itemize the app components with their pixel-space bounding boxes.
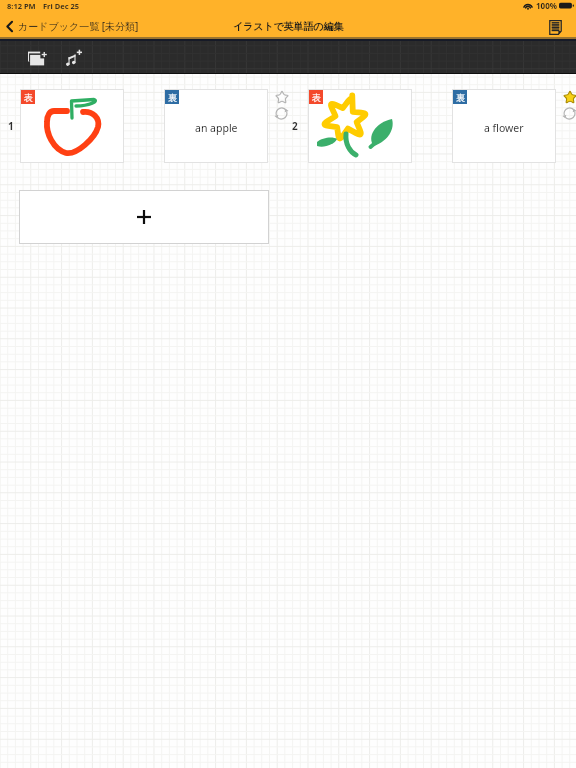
staticText: 表 <box>24 92 33 103</box>
button[interactable]: カードブック一覧 [未分類] <box>5 19 139 33</box>
button[interactable]: Add card <box>22 43 52 73</box>
button[interactable]: 表 <box>20 89 124 163</box>
button[interactable]: a flower <box>452 89 556 163</box>
staticText: 2 <box>292 119 298 133</box>
staticText: 裏 <box>168 92 177 103</box>
button[interactable]: Swap front and back <box>273 105 290 122</box>
button[interactable]: Favourite <box>273 88 290 105</box>
button[interactable]: an apple <box>164 89 268 163</box>
staticText: 表 <box>312 92 321 103</box>
staticText: イラストで英単語の編集 <box>233 20 344 32</box>
staticText: 裏 <box>456 92 465 103</box>
staticText: an apple <box>195 121 238 135</box>
staticText: 8:12 PM <box>7 1 36 11</box>
button[interactable]: Add card <box>19 190 269 244</box>
button[interactable]: Swap front and back <box>561 105 576 122</box>
staticText: 1 <box>8 119 14 133</box>
staticText: Fri Dec 25 <box>43 1 80 11</box>
button[interactable]: Add music <box>59 43 89 73</box>
button[interactable]: Notes <box>544 16 566 38</box>
button[interactable]: Favourite <box>561 88 576 105</box>
staticText: カードブック一覧 [未分類] <box>18 19 139 33</box>
staticText: 100% <box>536 0 557 11</box>
staticText: a flower <box>484 121 524 135</box>
button[interactable]: 表 <box>308 89 412 163</box>
